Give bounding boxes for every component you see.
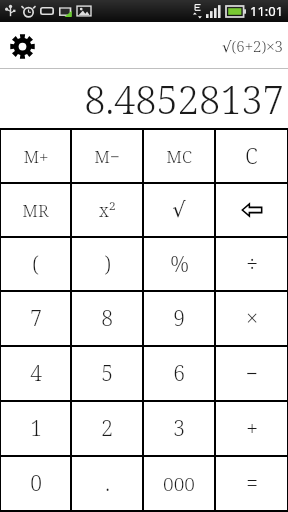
button[interactable]: −	[216, 347, 287, 400]
button[interactable]: M+	[1, 130, 70, 182]
button[interactable]: 3	[144, 402, 214, 455]
staticText: ×	[246, 304, 258, 333]
button[interactable]: 2	[72, 402, 142, 455]
staticText: )	[104, 250, 111, 279]
button[interactable]: C	[216, 130, 287, 182]
button[interactable]: =	[216, 457, 287, 510]
staticText: 4	[30, 359, 42, 388]
button[interactable]: Settings	[4, 28, 40, 64]
staticText: 8.48528137	[84, 73, 284, 125]
button[interactable]: 1	[1, 402, 70, 455]
staticText: 9	[173, 304, 185, 333]
staticText: .	[105, 469, 110, 498]
button[interactable]: )	[72, 238, 142, 290]
button[interactable]: 6	[144, 347, 214, 400]
button[interactable]: 9	[144, 292, 214, 345]
staticText: MC	[166, 145, 192, 168]
staticText: 11:01	[250, 2, 284, 20]
button[interactable]: 000	[144, 457, 214, 510]
staticText: MR	[22, 199, 49, 222]
button[interactable]: 5	[72, 347, 142, 400]
staticText: 2	[101, 414, 113, 443]
staticText: 6	[173, 359, 185, 388]
staticText: %	[170, 250, 189, 279]
staticText: (	[32, 250, 39, 279]
staticText: C	[245, 142, 258, 171]
button[interactable]: M−	[72, 130, 142, 182]
staticText: M−	[94, 145, 120, 168]
staticText: +	[246, 414, 258, 443]
button[interactable]: 8	[72, 292, 142, 345]
staticText: 1	[30, 414, 42, 443]
button[interactable]: 4	[1, 347, 70, 400]
staticText: 7	[30, 304, 42, 333]
button[interactable]: ×	[216, 292, 287, 345]
button[interactable]: +	[216, 402, 287, 455]
staticText: √	[172, 198, 186, 222]
button[interactable]: 0	[1, 457, 70, 510]
button[interactable]: MR	[1, 184, 70, 236]
button[interactable]: 7	[1, 292, 70, 345]
button[interactable]: x²	[72, 184, 142, 236]
button[interactable]: .	[72, 457, 142, 510]
staticText: 8	[101, 304, 113, 333]
staticText: ÷	[246, 250, 258, 279]
staticText: 5	[101, 359, 113, 388]
staticText: =	[246, 469, 258, 498]
button[interactable]: %	[144, 238, 214, 290]
staticText: −	[246, 359, 258, 388]
button[interactable]: √	[144, 184, 214, 236]
staticText: 000	[163, 471, 195, 497]
staticText: 0	[30, 469, 42, 498]
staticText: 3	[173, 414, 185, 443]
button[interactable]: Backspace	[216, 184, 287, 236]
button[interactable]: ÷	[216, 238, 287, 290]
staticText: x²	[99, 198, 116, 223]
button[interactable]: (	[1, 238, 70, 290]
staticText: √(6+2)×3	[222, 36, 283, 56]
staticText: M+	[23, 145, 49, 168]
button[interactable]: MC	[144, 130, 214, 182]
other: Backspace	[241, 199, 263, 221]
